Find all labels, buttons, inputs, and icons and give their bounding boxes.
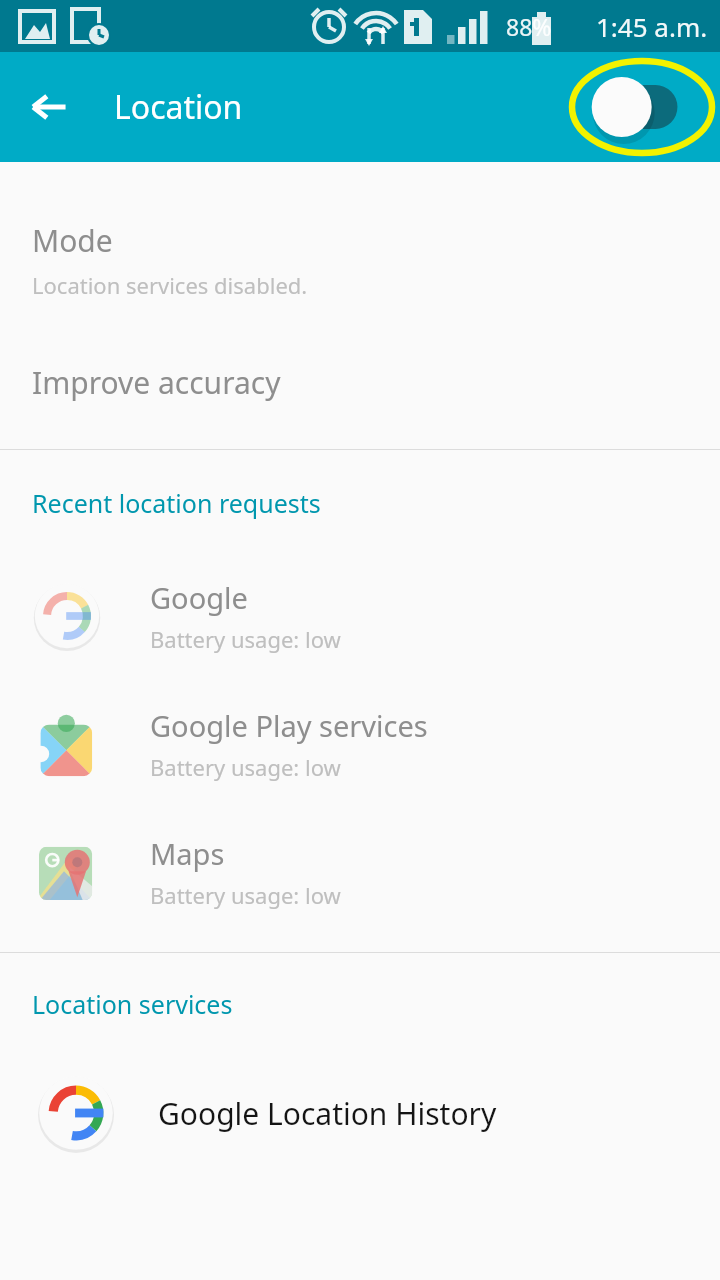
staticText: Location — [114, 85, 243, 129]
staticText: Location services — [32, 987, 720, 1021]
staticText: Location services disabled. — [32, 270, 308, 300]
staticText: Google — [150, 578, 248, 617]
staticText: 88% — [506, 11, 552, 42]
button[interactable]: Location switch, off — [568, 55, 720, 159]
staticText: Improve accuracy — [32, 362, 281, 403]
staticText: Maps — [150, 834, 225, 873]
button[interactable]: Google — [0, 578, 720, 654]
button[interactable]: Back — [20, 78, 78, 136]
staticText: Recent location requests — [32, 486, 720, 520]
staticText: Mode — [32, 220, 113, 261]
button[interactable]: Maps — [0, 834, 720, 910]
button[interactable]: Mode — [0, 220, 720, 300]
staticText: Battery usage: low — [150, 880, 341, 910]
staticText: 1:45 a.m. — [596, 9, 708, 44]
button[interactable]: Google Location History — [0, 1073, 720, 1153]
staticText: Google Location History — [158, 1093, 497, 1134]
staticText: Battery usage: low — [150, 624, 341, 654]
button[interactable]: Improve accuracy — [0, 362, 720, 403]
staticText: Google Play services — [150, 706, 428, 745]
button[interactable]: Google Play services — [0, 706, 720, 782]
staticText: Battery usage: low — [150, 752, 341, 782]
